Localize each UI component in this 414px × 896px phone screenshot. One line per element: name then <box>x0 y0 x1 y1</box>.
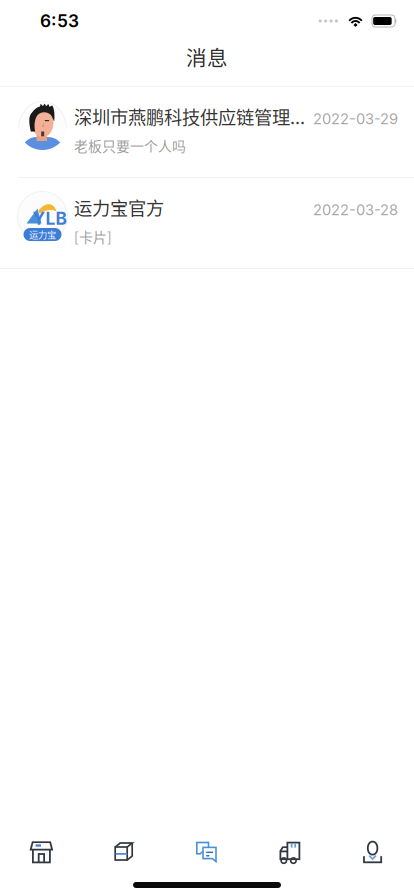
staticText: [卡片] <box>74 226 112 247</box>
staticText: 老板只要一个人吗 <box>74 135 186 156</box>
staticText: 2022-03-29 <box>313 110 398 128</box>
staticText: YLB <box>32 208 66 229</box>
staticText: 6:53 <box>40 10 79 31</box>
staticText: 消息 <box>186 42 228 72</box>
staticText: 2022-03-28 <box>313 201 398 219</box>
staticText: 深圳市燕鹏科技供应链管理... <box>74 103 305 129</box>
button[interactable]: 消息 <box>166 827 248 877</box>
button[interactable]: 我的 <box>331 827 414 877</box>
staticText: 运力宝 <box>29 228 56 241</box>
button[interactable]: 首页 <box>0 827 83 877</box>
button[interactable]: 货源 <box>83 827 166 877</box>
button[interactable]: 运单 <box>248 827 331 877</box>
staticText: 运力宝官方 <box>74 194 164 220</box>
button[interactable]: 深圳市燕鹏科技供应链管理... <box>0 87 414 178</box>
button[interactable]: YLB <box>0 178 414 269</box>
